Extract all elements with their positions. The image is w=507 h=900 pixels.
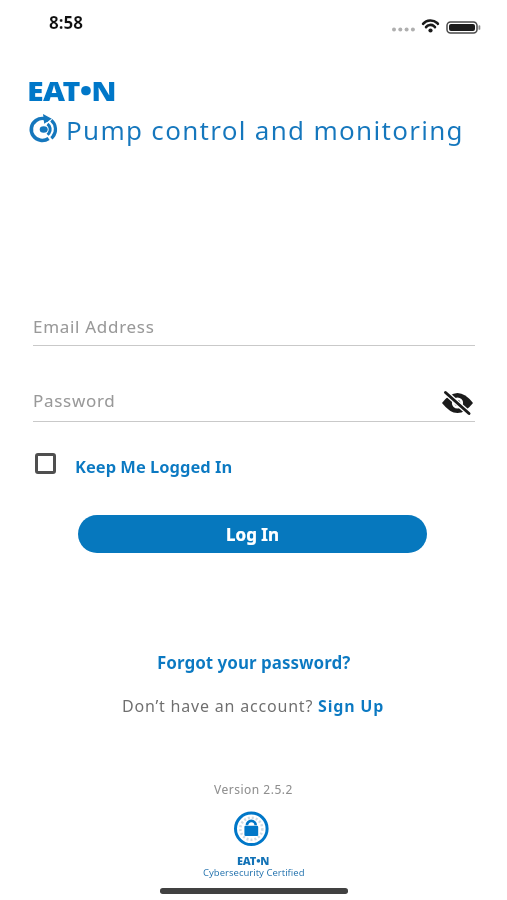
button[interactable]: Forgot your password? [157, 651, 351, 674]
button[interactable]: Password [33, 379, 475, 423]
button[interactable]: Email Address [33, 303, 475, 347]
staticText: 8:58 [49, 11, 83, 34]
staticText: Log In [226, 523, 279, 546]
button[interactable]: Keep Me Logged In [35, 450, 265, 478]
staticText: Password [33, 389, 116, 412]
staticText: Keep Me Logged In [75, 455, 233, 477]
staticText: EAT•N [27, 73, 117, 108]
button[interactable] [442, 392, 473, 414]
staticText: Pump control and monitoring [66, 112, 464, 147]
staticText: Version 2.5.2 [214, 781, 293, 797]
button[interactable]: Don’t have an account? Sign Up [122, 695, 385, 717]
staticText: Cybersecurity Certified [203, 866, 305, 879]
staticText: Email Address [33, 315, 155, 338]
button[interactable]: Log In [78, 515, 427, 553]
staticText: EAT•N [237, 853, 270, 868]
